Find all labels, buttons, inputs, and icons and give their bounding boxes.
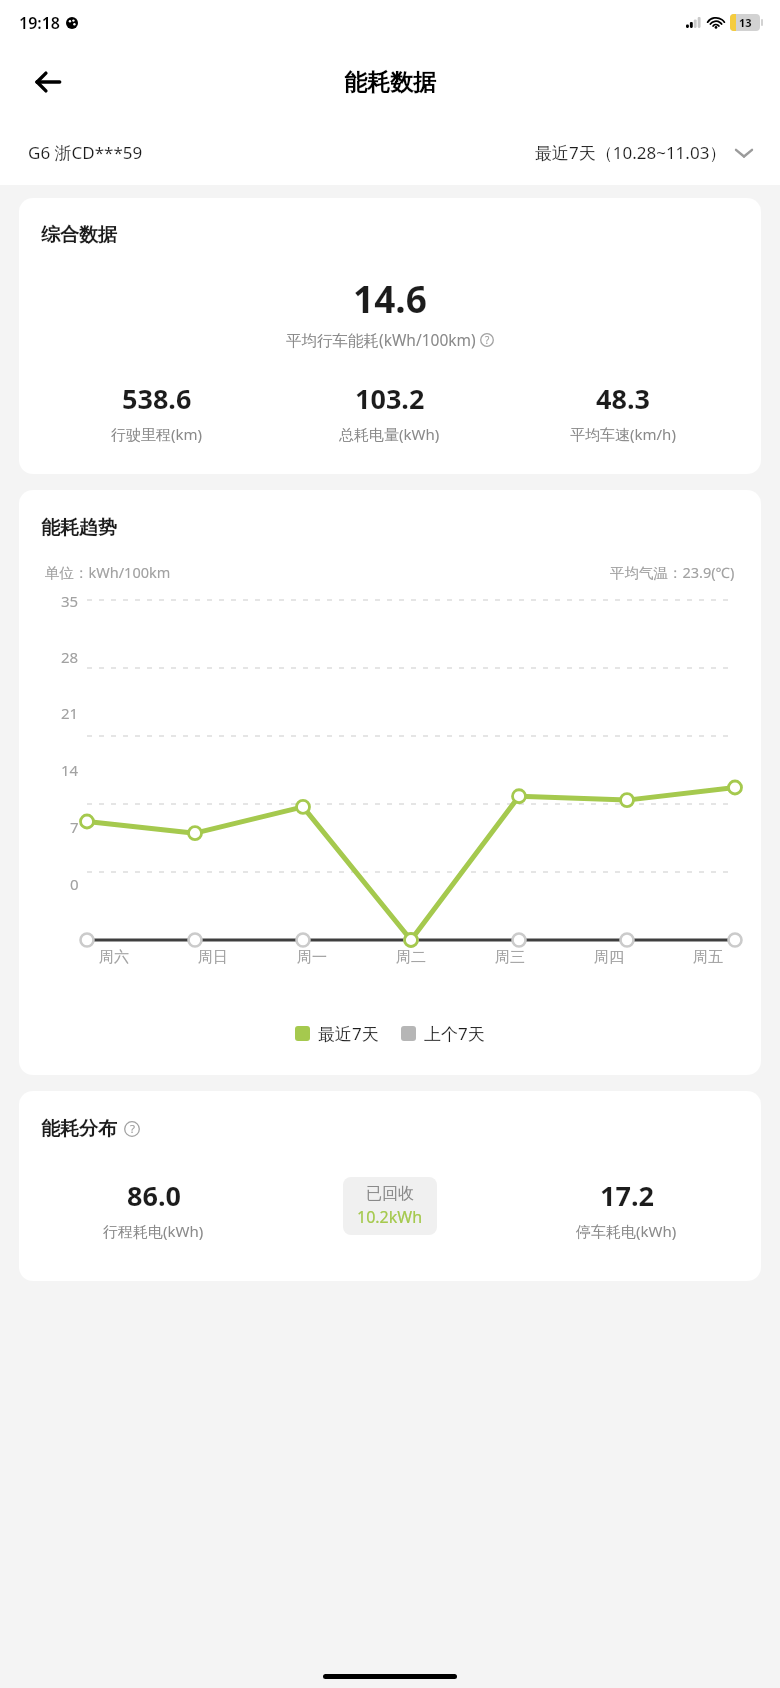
staticText: 总耗电量(kWh) xyxy=(339,424,440,444)
staticText: 最近7天（10.28~11.03） xyxy=(535,141,727,164)
staticText: 已回收 xyxy=(366,1184,414,1204)
staticText: ? xyxy=(130,1121,135,1137)
staticText: 周二 xyxy=(396,948,426,967)
staticText: 13 xyxy=(739,15,752,30)
button[interactable]: G6 浙CD***59 xyxy=(28,141,143,164)
staticText: 17.2 xyxy=(600,1177,654,1214)
staticText: 行程耗电(kWh) xyxy=(103,1221,204,1241)
staticText: 平均气温：23.9(℃) xyxy=(610,562,735,582)
staticText: 周六 xyxy=(99,948,129,967)
staticText: 周一 xyxy=(297,948,327,967)
button[interactable]: 能耗分布 xyxy=(19,1091,761,1281)
button[interactable]: 综合数据 xyxy=(19,198,761,474)
staticText: 平均车速(km/h) xyxy=(570,424,676,444)
staticText: 86.0 xyxy=(127,1177,181,1214)
staticText: 48.3 xyxy=(596,380,650,417)
button[interactable]: 能耗趋势 xyxy=(19,490,761,1075)
staticText: 0 xyxy=(70,874,79,894)
staticText: 综合数据 xyxy=(41,223,117,247)
button[interactable]: Back xyxy=(24,58,72,106)
staticText: ? xyxy=(485,333,490,347)
staticText: 14 xyxy=(61,760,79,780)
staticText: 行驶里程(km) xyxy=(111,424,203,444)
staticText: 周五 xyxy=(693,948,723,967)
staticText: 21 xyxy=(61,703,79,723)
staticText: 28 xyxy=(61,647,79,667)
staticText: 14.6 xyxy=(353,273,427,323)
staticText: 10.2kWh xyxy=(357,1206,423,1228)
staticText: 能耗数据 xyxy=(344,68,436,97)
staticText: 平均行车能耗(kWh/100km) xyxy=(286,329,476,350)
staticText: 周日 xyxy=(198,948,228,967)
staticText: 7 xyxy=(70,817,79,837)
staticText: 单位：kWh/100km xyxy=(45,562,171,582)
button[interactable]: 最近7天（10.28~11.03） xyxy=(535,141,752,164)
staticText: 538.6 xyxy=(122,380,192,417)
staticText: 能耗趋势 xyxy=(41,516,117,540)
staticText: 周四 xyxy=(594,948,624,967)
staticText: 上个7天 xyxy=(424,1022,485,1045)
staticText: 周三 xyxy=(495,948,525,967)
staticText: 最近7天 xyxy=(318,1022,379,1045)
staticText: 103.2 xyxy=(355,380,425,417)
staticText: 19:18 xyxy=(19,12,61,34)
staticText: 停车耗电(kWh) xyxy=(576,1221,677,1241)
staticText: 35 xyxy=(61,591,79,611)
staticText: 能耗分布 xyxy=(41,1117,117,1141)
